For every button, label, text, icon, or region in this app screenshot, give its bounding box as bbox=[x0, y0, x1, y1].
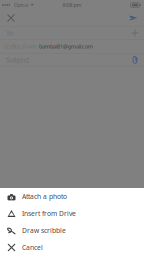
staticText: bambai81@gmail.com bbox=[39, 43, 93, 50]
staticText: Optus bbox=[14, 1, 29, 9]
staticText: Draw scribble bbox=[22, 226, 66, 235]
button[interactable]: Draw scribble bbox=[0, 222, 144, 239]
button[interactable]: Send bbox=[122, 10, 144, 25]
button[interactable]: Insert from Drive bbox=[0, 205, 144, 222]
staticText: 8:08 pm bbox=[62, 1, 81, 9]
staticText: Attach a photo bbox=[22, 192, 67, 201]
button[interactable]: Close bbox=[0, 10, 22, 25]
button[interactable]: Attach a photo bbox=[0, 188, 144, 205]
button[interactable]: Cancel bbox=[0, 239, 144, 256]
staticText: Subject bbox=[6, 56, 29, 64]
button[interactable]: Add recipient bbox=[126, 26, 144, 39]
staticText: To bbox=[6, 29, 13, 37]
staticText: Insert from Drive bbox=[22, 209, 76, 218]
staticText: Cancel bbox=[22, 243, 43, 252]
staticText: Cc/Bcc, From: bbox=[4, 43, 37, 50]
button[interactable]: Attach file bbox=[126, 53, 144, 66]
